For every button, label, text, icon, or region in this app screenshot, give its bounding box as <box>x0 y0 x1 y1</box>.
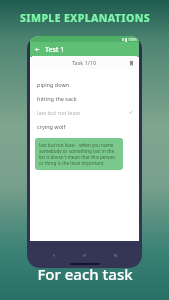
button[interactable]: last but not least - when you name someb… <box>35 138 123 170</box>
staticText: Test 1 <box>45 45 65 55</box>
staticText: last but not least - when you name someb… <box>39 142 119 166</box>
staticText: Task 1/10 <box>72 59 97 66</box>
button[interactable]: hitting the sack <box>30 91 139 105</box>
staticText: 100% <box>128 37 137 42</box>
button[interactable]: Back <box>49 251 58 260</box>
button[interactable]: Back <box>30 42 45 57</box>
button[interactable]: piping down <box>30 77 139 91</box>
staticText: hitting the sack <box>37 95 133 102</box>
staticText: For each task <box>37 264 133 284</box>
staticText: SIMPLE EXPLANATIONS <box>20 11 150 25</box>
staticText: last but not least <box>37 109 129 116</box>
button[interactable]: last but not least <box>30 105 139 119</box>
staticText: crying wolf <box>37 123 133 130</box>
button[interactable]: Recents <box>111 251 120 260</box>
staticText: piping down <box>37 81 133 88</box>
button[interactable]: Bookmark <box>125 57 137 69</box>
button[interactable]: Home <box>80 251 89 260</box>
button[interactable]: crying wolf <box>30 119 139 133</box>
